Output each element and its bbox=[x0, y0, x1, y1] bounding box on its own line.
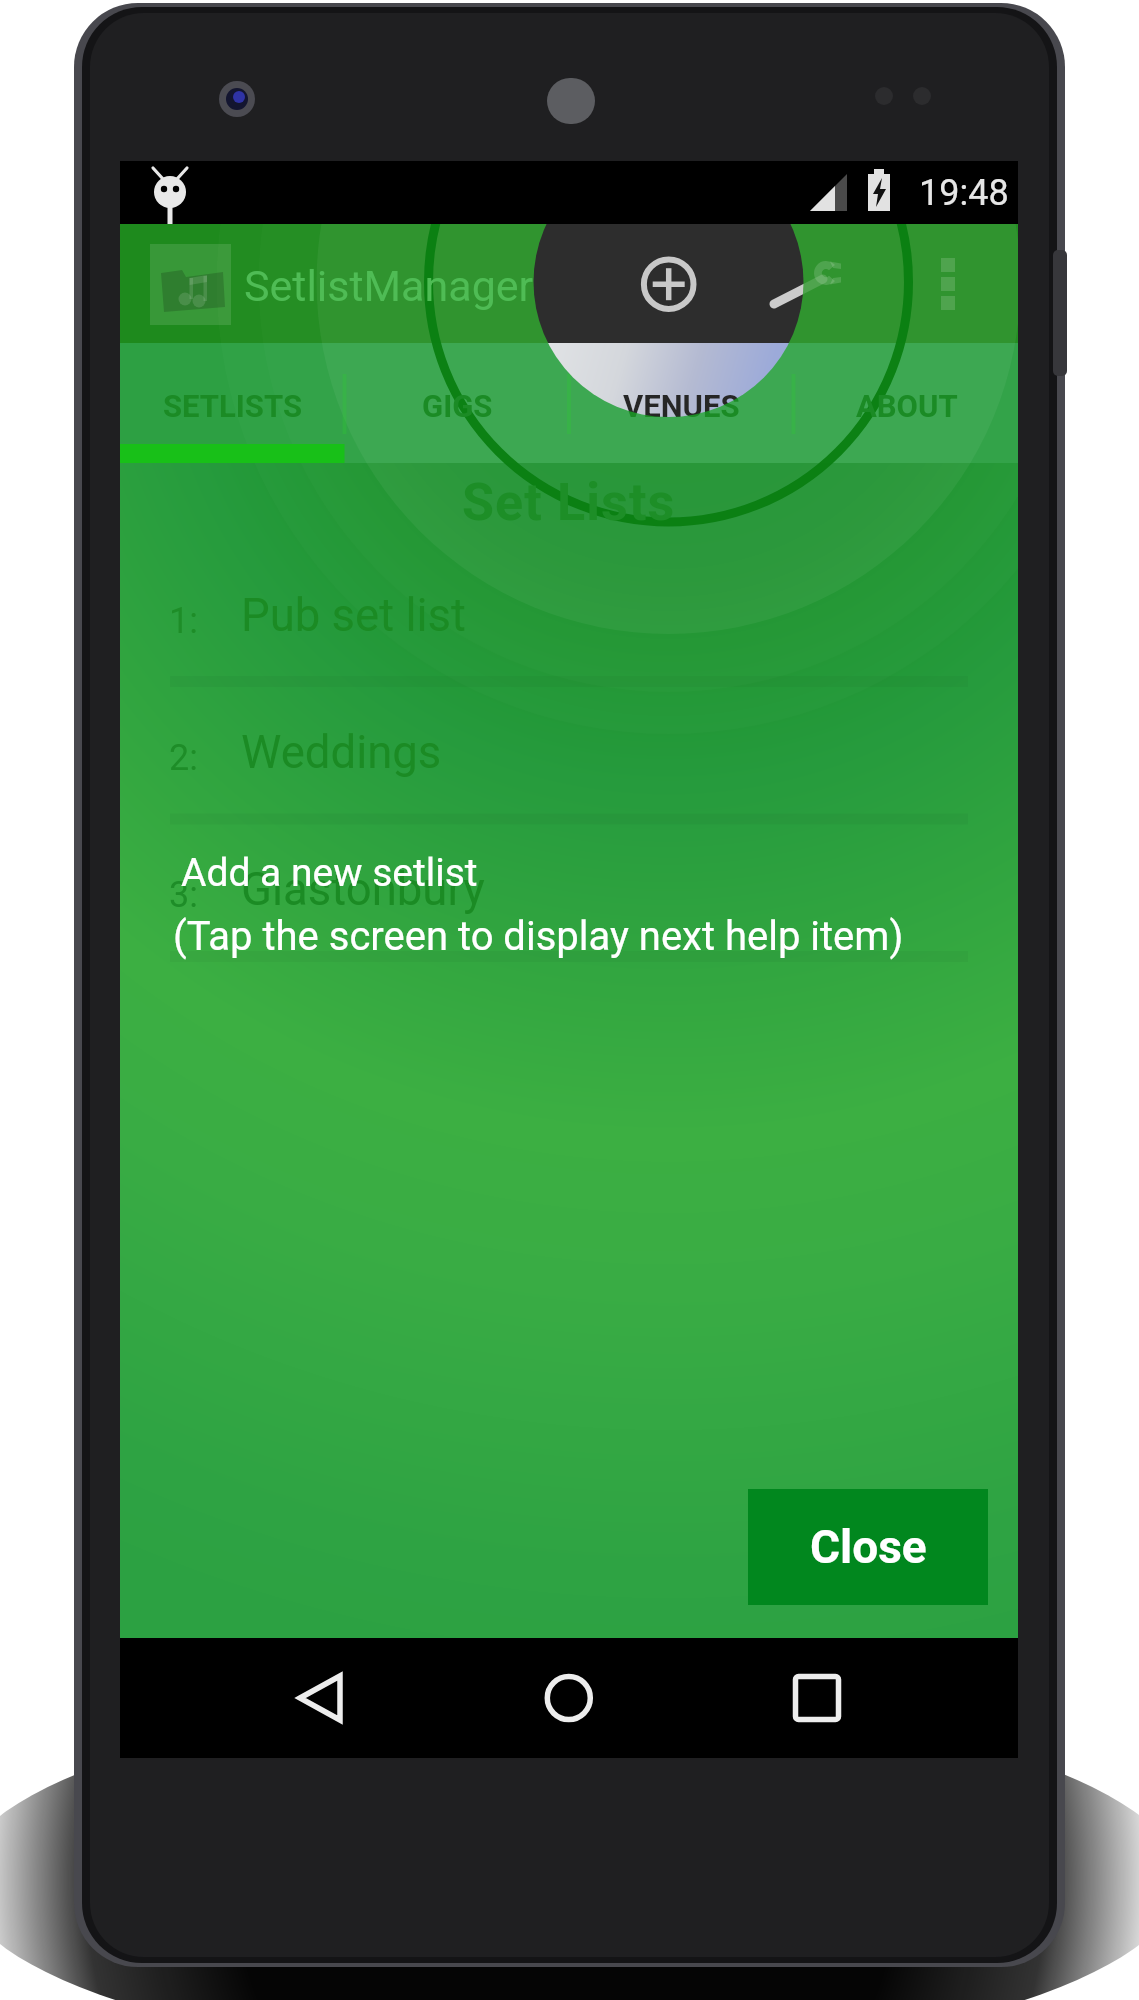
button[interactable]: 2: bbox=[120, 678, 1018, 788]
staticText: GIGS bbox=[422, 388, 493, 424]
staticText: Weddings bbox=[241, 726, 442, 779]
button[interactable]: GIGS bbox=[345, 343, 570, 444]
button[interactable]: 1: bbox=[120, 541, 1018, 651]
staticText: 19:48 bbox=[919, 172, 1009, 214]
button[interactable]: SETLISTS bbox=[120, 343, 345, 444]
staticText: 3: bbox=[169, 874, 198, 916]
staticText: 2: bbox=[169, 737, 198, 779]
staticText: (Tap the screen to display next help ite… bbox=[173, 913, 904, 960]
staticText: GIGS bbox=[422, 388, 493, 424]
staticText: Close bbox=[810, 1520, 927, 1574]
staticText: VENUES bbox=[623, 388, 740, 424]
button[interactable]: ABOUT bbox=[794, 343, 1019, 444]
button[interactable]: 3: bbox=[120, 815, 1018, 925]
staticText: SetlistManager bbox=[244, 261, 534, 311]
staticText: SETLISTS bbox=[163, 388, 303, 424]
button[interactable]: GIGS bbox=[345, 343, 570, 444]
staticText: Set Lists bbox=[462, 472, 676, 532]
staticText: Weddings bbox=[241, 726, 442, 779]
button[interactable]: SETLISTS bbox=[120, 343, 345, 444]
button[interactable]: 2: bbox=[120, 678, 1018, 788]
button[interactable]: VENUES bbox=[569, 343, 794, 444]
button[interactable]: VENUES bbox=[569, 343, 794, 444]
staticText: ABOUT bbox=[856, 388, 958, 424]
staticText: Set Lists bbox=[462, 472, 676, 532]
button[interactable]: 3: bbox=[120, 815, 1018, 925]
button[interactable]: Home bbox=[419, 1638, 718, 1758]
staticText: 2: bbox=[169, 737, 198, 779]
staticText: Glastonbury bbox=[241, 863, 485, 916]
staticText: 3: bbox=[169, 874, 198, 916]
button[interactable]: Close bbox=[748, 1489, 988, 1605]
staticText: 1: bbox=[169, 600, 198, 642]
staticText: 1: bbox=[169, 600, 198, 642]
staticText: Pub set list bbox=[241, 589, 466, 642]
button[interactable]: 1: bbox=[120, 541, 1018, 651]
button[interactable]: Recent apps bbox=[719, 1638, 1018, 1758]
button[interactable]: Back bbox=[120, 1638, 419, 1758]
button[interactable]: ABOUT bbox=[794, 343, 1018, 444]
staticText: ABOUT bbox=[856, 388, 958, 424]
button[interactable]: SetlistManager bbox=[244, 261, 534, 311]
staticText: Pub set list bbox=[241, 589, 466, 642]
staticText: Add a new setlist bbox=[181, 850, 478, 896]
staticText: VENUES bbox=[623, 388, 740, 424]
staticText: Glastonbury bbox=[241, 863, 485, 916]
staticText: SETLISTS bbox=[163, 388, 303, 424]
